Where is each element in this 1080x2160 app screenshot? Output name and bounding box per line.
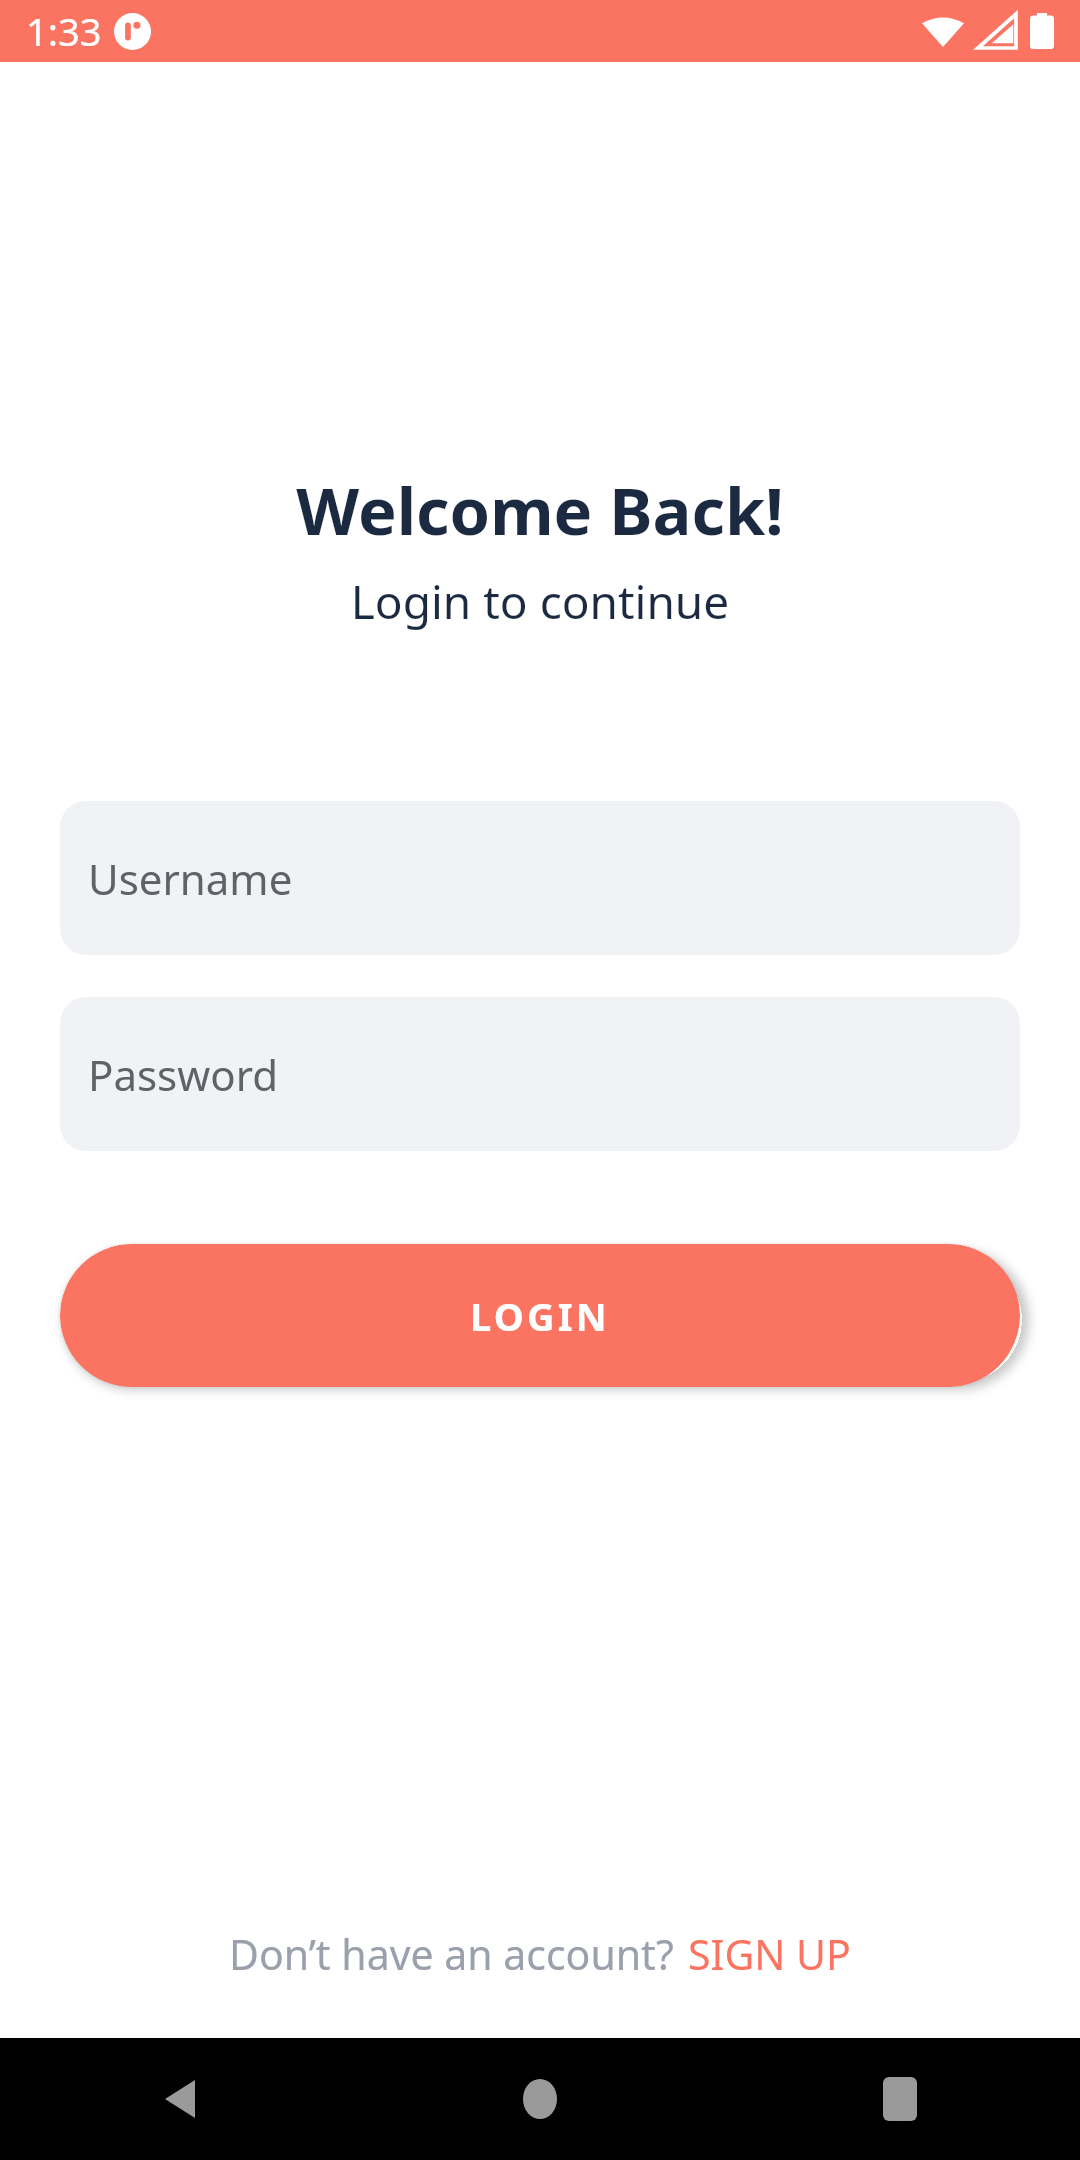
staticText: Username — [88, 850, 293, 907]
staticText: SIGN UP — [688, 1926, 851, 1982]
staticText: Don’t have an account? — [229, 1926, 674, 1982]
staticText: 1:33 — [26, 5, 102, 57]
button[interactable]: Home — [360, 2038, 720, 2160]
staticText: Login to continue — [0, 570, 1080, 633]
button[interactable]: Username — [60, 801, 1020, 955]
button[interactable]: Recent apps — [720, 2038, 1080, 2160]
button[interactable]: Back — [0, 2038, 360, 2160]
staticText: Password — [88, 1046, 278, 1103]
button[interactable]: Password — [60, 997, 1020, 1151]
button[interactable]: LOGIN — [60, 1244, 1020, 1387]
staticText: LOGIN — [470, 1290, 610, 1342]
button[interactable]: SIGN UP — [688, 1926, 851, 1982]
staticText: Welcome Back! — [0, 466, 1080, 555]
